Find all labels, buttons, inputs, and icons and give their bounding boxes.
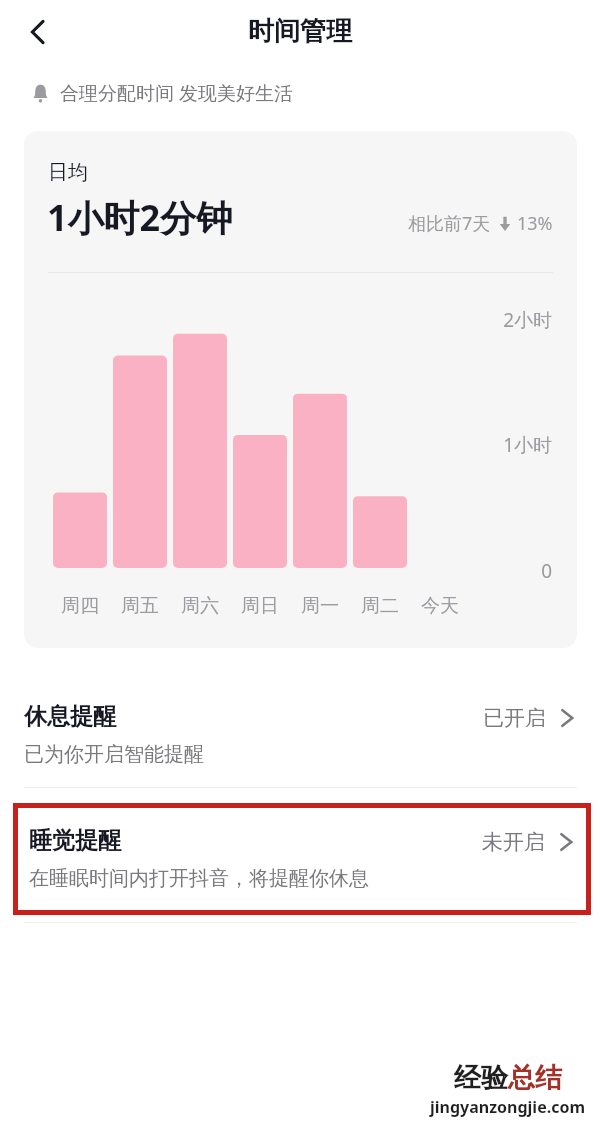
- staticText: 休息提醒: [24, 702, 116, 731]
- staticText: 1小时: [24, 432, 552, 458]
- staticText: 时间管理: [0, 15, 600, 48]
- staticText: 周四: [53, 594, 107, 618]
- button[interactable]: 睡觉提醒: [18, 808, 586, 910]
- button[interactable]: 返回: [10, 4, 66, 60]
- staticText: 1小时2分钟: [47, 193, 233, 242]
- staticText: 日均: [48, 160, 88, 185]
- staticText: 经验: [454, 1061, 508, 1095]
- staticText: 周五: [113, 594, 167, 618]
- staticText: 周二: [353, 594, 407, 618]
- staticText: 已开启: [483, 705, 546, 731]
- staticText: 睡觉提醒: [29, 826, 121, 855]
- staticText: 0: [24, 558, 552, 584]
- staticText: 周一: [293, 594, 347, 618]
- staticText: 相比前7天: [408, 211, 491, 236]
- staticText: 总结: [508, 1061, 562, 1095]
- staticText: 未开启: [482, 829, 545, 855]
- staticText: 已为你开启智能提醒: [24, 742, 204, 767]
- button[interactable]: 休息提醒: [0, 672, 600, 780]
- staticText: 周六: [173, 594, 227, 618]
- staticText: jingyanzongjie.com: [430, 1096, 586, 1118]
- staticText: 周日: [233, 594, 287, 618]
- staticText: 今天: [413, 594, 467, 618]
- staticText: 2小时: [24, 307, 552, 333]
- staticText: 合理分配时间 发现美好生活: [60, 80, 293, 106]
- staticText: 在睡眠时间内打开抖音，将提醒你休息: [29, 866, 369, 891]
- staticText: 13%: [517, 211, 553, 236]
